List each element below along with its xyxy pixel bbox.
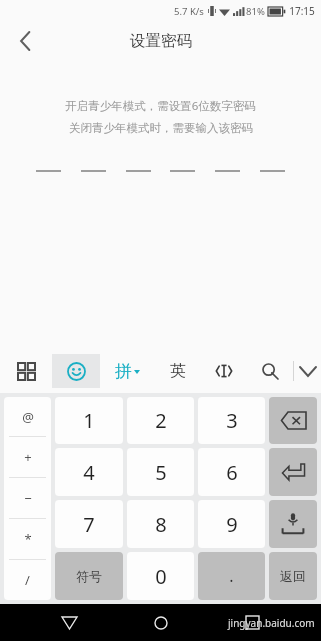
staticText: 8 — [155, 511, 167, 538]
staticText: 0 — [155, 563, 167, 590]
staticText: 拼 — [115, 361, 132, 382]
staticText: 9 — [226, 511, 238, 538]
button[interactable]: − — [4, 478, 51, 518]
button[interactable]: Hide keyboard — [294, 349, 321, 393]
button[interactable]: 7 — [55, 500, 123, 548]
button[interactable]: 8 — [127, 500, 194, 548]
button[interactable]: Enter — [269, 448, 317, 496]
staticText: 开启青少年模式，需设置6位数字密码 — [65, 98, 256, 114]
button[interactable]: @ — [4, 397, 51, 436]
staticText: . — [229, 565, 234, 587]
button[interactable]: Search — [247, 349, 293, 393]
button[interactable]: Emoji — [52, 354, 100, 388]
staticText: 81% — [246, 5, 265, 18]
button[interactable]: 6 — [198, 448, 265, 496]
button[interactable]: Cursor move — [201, 349, 247, 393]
button[interactable]: 5 — [127, 448, 194, 496]
staticText: 2 — [155, 407, 167, 434]
button[interactable]: 符号 — [55, 552, 123, 600]
button[interactable]: 返回 — [269, 552, 317, 600]
button[interactable]: 2 — [127, 397, 194, 444]
staticText: / — [25, 571, 30, 589]
button[interactable]: * — [4, 519, 51, 559]
staticText: @ — [22, 408, 34, 426]
button[interactable]: 3 — [198, 397, 265, 444]
staticText: * — [24, 530, 32, 548]
staticText: 1 — [83, 407, 95, 434]
staticText: jingyan.baidu.com — [228, 616, 315, 630]
button[interactable]: 英 — [155, 349, 201, 393]
button[interactable]: 0 — [127, 552, 194, 600]
staticText: 4 — [83, 459, 95, 486]
staticText: 英 — [170, 361, 186, 381]
staticText: − — [24, 489, 32, 507]
staticText: + — [24, 448, 32, 466]
staticText: 关闭青少年模式时，需要输入该密码 — [69, 121, 253, 135]
staticText: 7 — [83, 511, 95, 538]
button[interactable]: 1 — [55, 397, 123, 444]
staticText: 3 — [226, 407, 238, 434]
button[interactable]: 拼 — [100, 349, 155, 393]
staticText: 5.7 K/s — [174, 5, 204, 18]
button[interactable]: Space / voice input — [269, 500, 317, 548]
button[interactable]: Home — [138, 604, 184, 641]
staticText: 返回 — [280, 568, 306, 584]
staticText: 设置密码 — [130, 31, 192, 51]
button[interactable]: Back — [46, 604, 92, 641]
button[interactable]: Back — [8, 24, 42, 58]
button[interactable]: 4 — [55, 448, 123, 496]
button[interactable]: 9 — [198, 500, 265, 548]
button[interactable]: . — [198, 552, 265, 600]
button[interactable]: Delete — [269, 397, 317, 444]
button[interactable]: + — [4, 437, 51, 477]
staticText: 符号 — [76, 568, 102, 584]
staticText: 6 — [226, 459, 238, 486]
button[interactable]: Keyboard layouts — [0, 349, 52, 393]
staticText: 5 — [155, 459, 167, 486]
button[interactable]: / — [4, 560, 51, 600]
staticText: 17:15 — [289, 4, 315, 18]
button[interactable]: Recent apps — [229, 604, 275, 641]
